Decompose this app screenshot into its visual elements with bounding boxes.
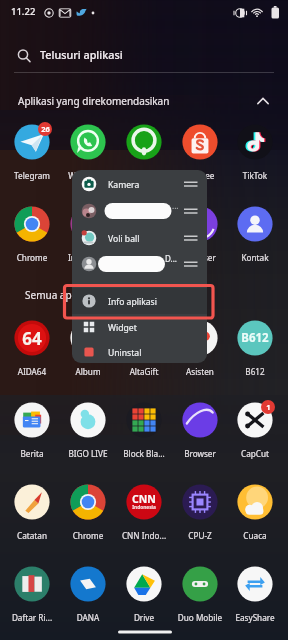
- button[interactable]: Drive: [116, 565, 172, 625]
- button[interactable]: Shopee: [172, 123, 228, 183]
- staticText: AltaGift: [116, 366, 172, 377]
- button[interactable]: 26: [4, 123, 60, 183]
- staticText: D...: [165, 253, 177, 264]
- button[interactable]: Berita: [4, 401, 60, 461]
- button[interactable]: Chrome: [4, 205, 60, 265]
- button[interactable]: Catatan: [4, 483, 60, 543]
- staticText: CapCut: [227, 448, 283, 459]
- button[interactable]: Asisten: [172, 319, 228, 379]
- button[interactable]: X: [116, 205, 172, 265]
- button[interactable]: Aplikasi yang direkomendasikan: [0, 90, 288, 112]
- staticText: Instagram: [60, 252, 116, 263]
- staticText: DANA: [60, 612, 116, 623]
- staticText: ...: [172, 200, 179, 211]
- button[interactable]: Kontak: [227, 205, 283, 265]
- staticText: CPU-Z: [172, 530, 228, 541]
- button[interactable]: Browser: [172, 401, 228, 461]
- staticText: Block Bla...: [116, 448, 172, 459]
- staticText: 1: [266, 402, 271, 412]
- staticText: Chrome: [4, 252, 60, 263]
- staticText: Album: [60, 366, 116, 377]
- button[interactable]: Kamera: [72, 171, 207, 197]
- staticText: CNN: [132, 492, 156, 506]
- staticText: Telusuri aplikasi: [40, 47, 123, 62]
- staticText: 11.22: [11, 5, 36, 18]
- staticText: Kamera: [108, 179, 140, 191]
- button[interactable]: CPU-Z: [172, 483, 228, 543]
- staticText: Browser: [172, 448, 228, 459]
- staticText: Indonesia: [132, 504, 156, 511]
- staticText: Asisten: [172, 366, 228, 377]
- button[interactable]: Daftar Ri...: [4, 565, 60, 625]
- button[interactable]: 1: [227, 401, 283, 461]
- button[interactable]: BIGO LIVE: [60, 401, 116, 461]
- staticText: AIDA64: [4, 366, 60, 377]
- staticText: Widget: [108, 322, 137, 334]
- staticText: Browser: [172, 252, 228, 263]
- button[interactable]: [72, 198, 207, 224]
- button[interactable]: DANA: [60, 565, 116, 625]
- staticText: Kontak: [227, 252, 283, 263]
- staticText: Aplikasi yang direkomendasikan: [18, 94, 170, 108]
- staticText: WhatsApp: [60, 170, 116, 181]
- staticText: Uninstal: [108, 347, 142, 359]
- button[interactable]: CNN: [116, 483, 172, 543]
- button[interactable]: AltaGift: [116, 319, 172, 379]
- staticText: B612: [227, 366, 283, 377]
- staticText: Voli ball: [108, 233, 140, 245]
- staticText: Daftar Ri...: [4, 612, 60, 623]
- staticText: EasyShare: [227, 612, 283, 623]
- button[interactable]: Voli ball: [72, 225, 207, 251]
- staticText: Telegram: [4, 170, 60, 181]
- button[interactable]: B612: [227, 319, 283, 379]
- button[interactable]: Info aplikasi: [72, 288, 207, 314]
- staticText: Berita: [4, 448, 60, 459]
- button[interactable]: Uninstal: [72, 339, 207, 363]
- staticText: X: [116, 252, 172, 263]
- staticText: Shopee: [172, 170, 228, 181]
- button[interactable]: Block Bla...: [116, 401, 172, 461]
- staticText: BIGO LIVE: [60, 448, 116, 459]
- staticText: Catatan: [4, 530, 60, 541]
- button[interactable]: TikTok: [227, 123, 283, 183]
- button[interactable]: [72, 251, 207, 277]
- staticText: TikTok: [227, 170, 283, 181]
- button[interactable]: WhatsApp: [60, 123, 116, 183]
- button[interactable]: Browser: [172, 205, 228, 265]
- button[interactable]: Chrome: [60, 483, 116, 543]
- staticText: Cuaca: [227, 530, 283, 541]
- staticText: Chrome: [60, 530, 116, 541]
- staticText: CNN Indo...: [116, 530, 172, 541]
- staticText: Drive: [116, 612, 172, 623]
- staticText: Info aplikasi: [108, 296, 157, 308]
- button[interactable]: Maps: [116, 123, 172, 183]
- button[interactable]: Cuaca: [227, 483, 283, 543]
- staticText: B612: [241, 330, 269, 346]
- staticText: 64: [22, 327, 42, 350]
- button[interactable]: 64: [4, 319, 60, 379]
- staticText: 26: [41, 124, 50, 134]
- button[interactable]: Duo Mobile: [172, 565, 228, 625]
- staticText: Duo Mobile: [172, 612, 228, 623]
- staticText: Semua aplikasi: [25, 288, 96, 302]
- button[interactable]: Album: [60, 319, 116, 379]
- button[interactable]: Widget: [72, 314, 207, 340]
- button[interactable]: EasyShare: [227, 565, 283, 625]
- button[interactable]: Instagram: [60, 205, 116, 265]
- button[interactable]: Telusuri aplikasi: [0, 42, 288, 73]
